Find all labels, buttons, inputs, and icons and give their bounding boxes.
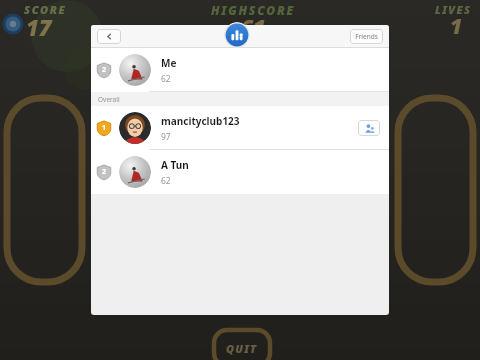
button[interactable]: 2 xyxy=(91,48,389,92)
staticText: QUIT xyxy=(226,341,258,356)
staticText: HIGHSCORE xyxy=(211,2,296,18)
staticText: 1 xyxy=(450,12,463,41)
staticText: 1 xyxy=(102,123,107,133)
staticText: mancityclub123 xyxy=(161,114,240,128)
staticText: SCORE xyxy=(24,2,67,17)
staticText: A Tun xyxy=(161,158,189,172)
button[interactable]: Friends xyxy=(350,29,383,44)
button[interactable]: Add friend xyxy=(358,120,380,136)
staticText: Friends xyxy=(355,32,378,41)
staticText: 97 xyxy=(161,131,171,143)
staticText: 2 xyxy=(102,65,107,75)
staticText: 62 xyxy=(161,73,171,85)
staticText: 2 xyxy=(102,167,107,177)
button[interactable]: QUIT xyxy=(214,330,270,360)
staticText: 17 xyxy=(26,12,52,42)
button[interactable]: Game Center xyxy=(224,22,250,48)
staticText: Overall xyxy=(98,95,120,104)
staticText: Me xyxy=(161,56,177,70)
button[interactable]: 1 xyxy=(91,106,389,150)
button[interactable]: Back xyxy=(97,29,121,44)
staticText: 62 xyxy=(161,175,171,187)
staticText: LIVES xyxy=(435,2,472,17)
button[interactable]: 2 xyxy=(91,150,389,194)
staticText: 61 xyxy=(241,13,266,42)
